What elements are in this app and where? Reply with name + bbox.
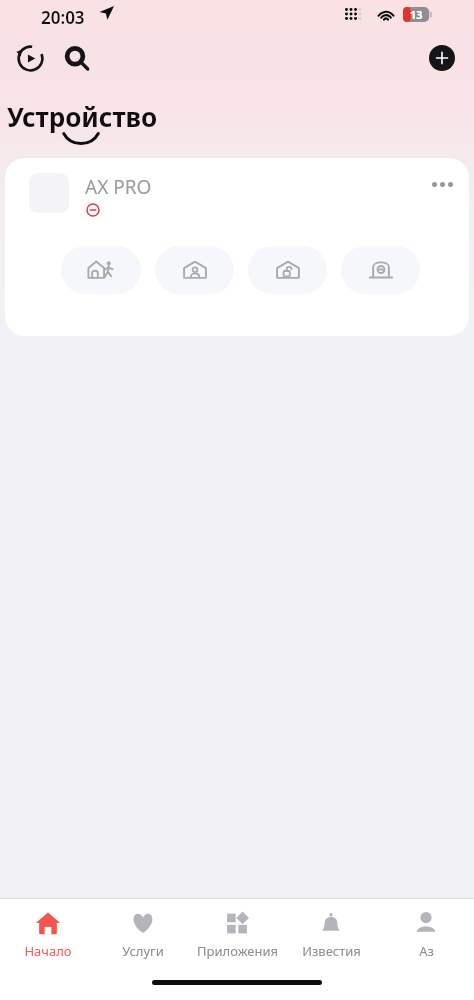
button[interactable]: Приложения [191,908,283,962]
button[interactable]: Disarm [248,246,327,294]
staticText: 20:03 [41,6,85,29]
button[interactable]: Услуги [97,908,189,962]
staticText: Известия [302,942,361,960]
button[interactable]: Add device [429,45,455,71]
staticText: Начало [24,942,72,960]
staticText: Услуги [122,942,164,960]
staticText: Приложения [197,942,278,960]
button[interactable]: History playback [8,36,52,80]
button[interactable]: Начало [2,908,94,962]
button[interactable]: Search [54,36,98,80]
staticText: Аз [419,942,434,960]
button[interactable]: More options [423,168,461,200]
button[interactable]: Arm stay [155,246,234,294]
button[interactable]: Arm away [61,246,141,294]
button[interactable]: Известия [285,908,377,962]
staticText: AX PRO [85,174,152,200]
button[interactable]: Аз [380,908,472,962]
staticText: 13 [410,7,423,22]
button[interactable]: Silence alarm [341,246,420,294]
staticText: Устройство [7,99,158,134]
